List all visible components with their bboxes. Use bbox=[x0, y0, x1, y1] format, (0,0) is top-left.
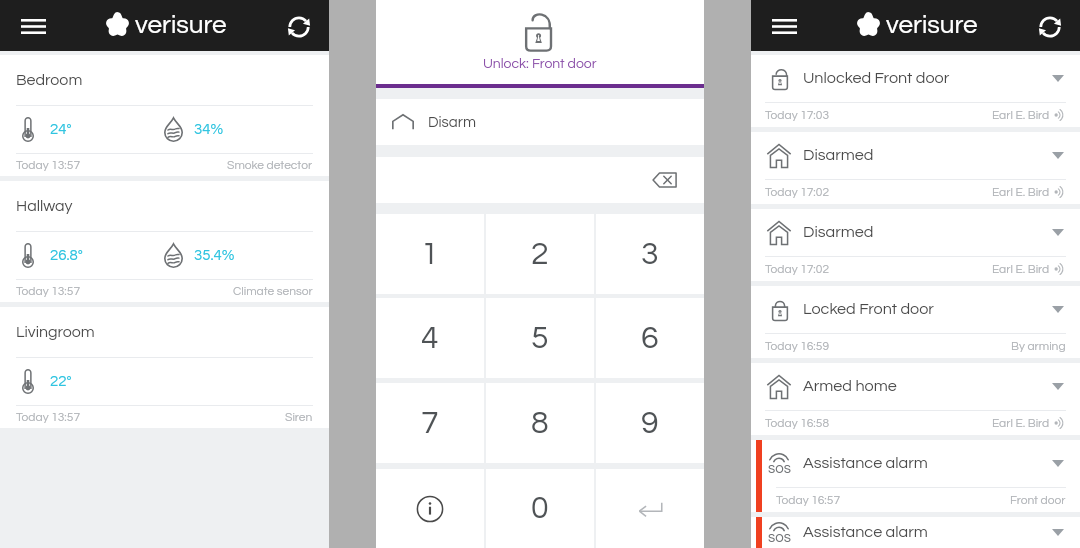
staticText: Today 13:57 bbox=[16, 159, 81, 171]
staticText: Locked Front door bbox=[803, 301, 934, 318]
button[interactable]: Refresh bbox=[279, 7, 319, 47]
staticText: Bedroom bbox=[16, 72, 83, 88]
button[interactable]: sos bbox=[751, 440, 1080, 512]
button[interactable]: Locked Front door bbox=[751, 286, 1080, 358]
button[interactable]: 7 bbox=[376, 383, 484, 463]
button[interactable]: Menu bbox=[13, 6, 53, 46]
button[interactable]: Hallway bbox=[0, 181, 329, 302]
staticText: Livingroom bbox=[16, 324, 95, 340]
button[interactable]: 2 bbox=[486, 214, 594, 294]
staticText: Armed home bbox=[803, 378, 897, 395]
staticText: 35.4% bbox=[194, 248, 235, 263]
staticText: verisure bbox=[135, 12, 227, 39]
staticText: Disarmed bbox=[803, 224, 874, 241]
button[interactable]: Armed home bbox=[751, 363, 1080, 435]
button[interactable]: Unlocked Front door bbox=[751, 55, 1080, 127]
staticText: Unlock: Front door bbox=[483, 57, 597, 71]
staticText: 1 bbox=[421, 238, 439, 271]
button[interactable]: 4 bbox=[376, 298, 484, 378]
staticText: 4 bbox=[421, 322, 439, 355]
button[interactable]: Disarmed bbox=[751, 132, 1080, 204]
staticText: 26.8° bbox=[50, 248, 83, 263]
staticText: 22° bbox=[50, 374, 72, 389]
staticText: 2 bbox=[531, 238, 549, 271]
button[interactable] bbox=[596, 469, 704, 548]
staticText: 7 bbox=[421, 407, 439, 440]
staticText: Earl E. Bird bbox=[992, 417, 1050, 429]
staticText: Today 17:02 bbox=[765, 186, 830, 198]
button[interactable]: 5 bbox=[486, 298, 594, 378]
staticText: 6 bbox=[641, 322, 659, 355]
staticText: Disarmed bbox=[803, 147, 874, 164]
button[interactable] bbox=[376, 469, 484, 548]
button[interactable]: sos bbox=[751, 517, 1080, 548]
staticText: 3 bbox=[641, 238, 659, 271]
button[interactable]: Livingroom bbox=[0, 307, 329, 428]
button[interactable]: Backspace bbox=[647, 167, 681, 193]
staticText: Disarm bbox=[428, 115, 476, 130]
button[interactable]: 3 bbox=[596, 214, 704, 294]
staticText: 8 bbox=[531, 407, 549, 440]
button[interactable]: Refresh bbox=[1030, 7, 1070, 47]
button[interactable]: Menu bbox=[764, 6, 804, 46]
button[interactable]: Disarmed bbox=[751, 209, 1080, 281]
staticText: Smoke detector bbox=[227, 159, 313, 171]
staticText: verisure bbox=[886, 12, 978, 39]
staticText: 5 bbox=[531, 322, 549, 355]
button[interactable]: 8 bbox=[486, 383, 594, 463]
staticText: Earl E. Bird bbox=[992, 263, 1050, 275]
staticText: Today 17:03 bbox=[765, 109, 830, 121]
staticText: 9 bbox=[641, 407, 659, 440]
staticText: Climate sensor bbox=[233, 285, 313, 297]
staticText: Siren bbox=[285, 411, 313, 423]
button[interactable]: 1 bbox=[376, 214, 484, 294]
staticText: sos bbox=[768, 530, 791, 545]
staticText: 24° bbox=[50, 122, 72, 137]
staticText: 34% bbox=[194, 122, 224, 137]
staticText: 0 bbox=[531, 492, 549, 525]
button[interactable]: 0 bbox=[486, 469, 594, 548]
staticText: Assistance alarm bbox=[803, 524, 928, 541]
button[interactable]: 6 bbox=[596, 298, 704, 378]
staticText: Earl E. Bird bbox=[992, 109, 1050, 121]
staticText: Today 17:02 bbox=[765, 263, 830, 275]
button[interactable]: Disarm bbox=[376, 99, 704, 145]
staticText: Front door bbox=[1010, 494, 1066, 506]
staticText: Today 16:59 bbox=[765, 340, 830, 352]
staticText: Today 13:57 bbox=[16, 411, 81, 423]
staticText: Earl E. Bird bbox=[992, 186, 1050, 198]
staticText: Hallway bbox=[16, 198, 73, 214]
staticText: Today 13:57 bbox=[16, 285, 81, 297]
staticText: Assistance alarm bbox=[803, 455, 928, 472]
button[interactable]: 9 bbox=[596, 383, 704, 463]
staticText: Unlocked Front door bbox=[803, 70, 950, 87]
staticText: By arming bbox=[1011, 340, 1066, 352]
button[interactable]: Bedroom bbox=[0, 55, 329, 176]
staticText: sos bbox=[768, 461, 791, 476]
staticText: Today 16:58 bbox=[765, 417, 830, 429]
staticText: Today 16:57 bbox=[776, 494, 841, 506]
